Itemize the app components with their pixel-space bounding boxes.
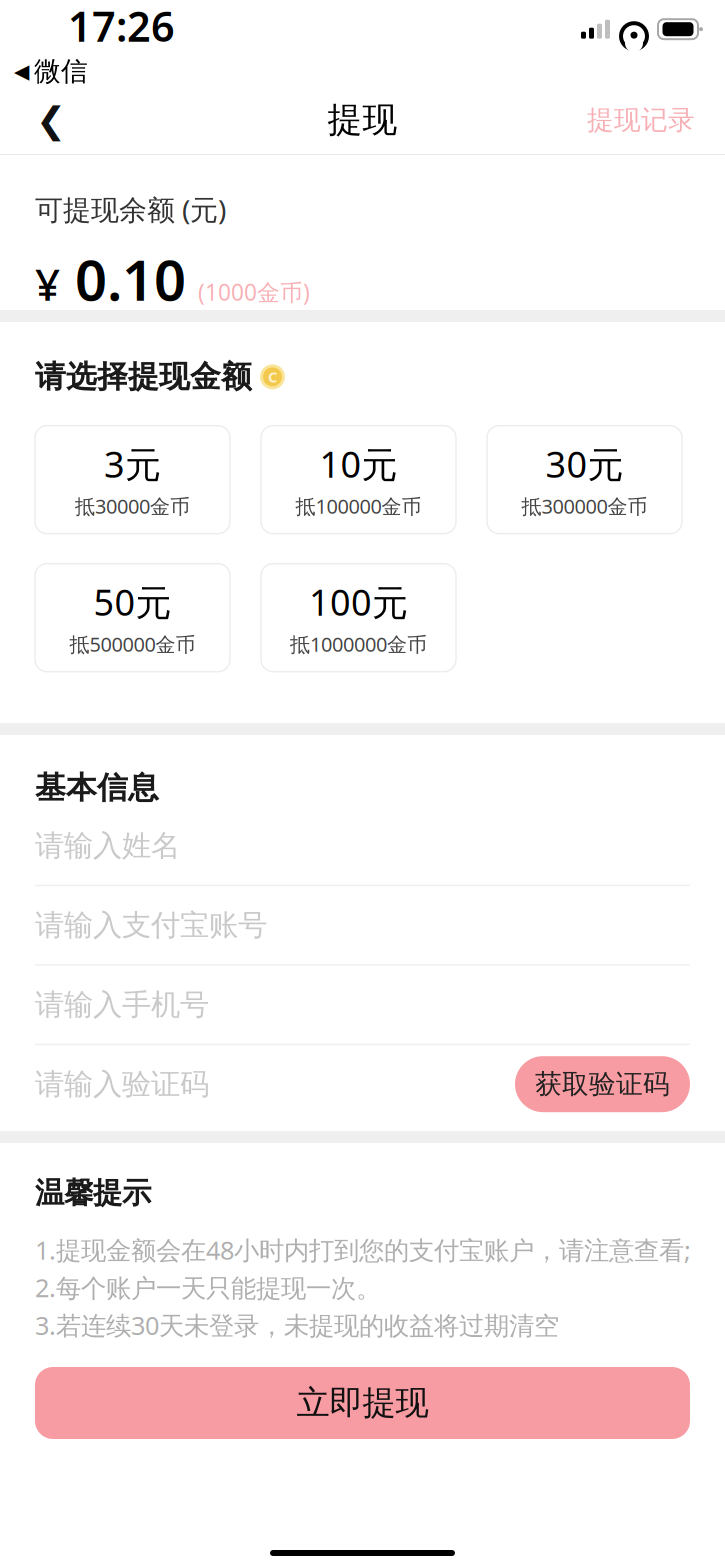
button[interactable]: 请输入验证码 <box>35 1045 515 1123</box>
button[interactable]: Back <box>16 90 86 150</box>
staticText: 30元 <box>545 440 623 488</box>
staticText: 请输入姓名 <box>35 828 180 864</box>
staticText: 抵100000金币 <box>295 493 421 519</box>
staticText: 可提现余额 (元) <box>35 191 226 228</box>
staticText: 3元 <box>104 440 161 488</box>
staticText: 请输入验证码 <box>35 1066 209 1102</box>
staticText: 请输入手机号 <box>35 987 209 1023</box>
staticText: ◀ <box>14 60 29 83</box>
button[interactable]: 提现记录 <box>573 90 709 150</box>
staticText: 提现 <box>327 99 397 141</box>
staticText: 基本信息 <box>35 769 159 807</box>
staticText: 1.提现金额会在48小时内打到您的支付宝账户，请注意查看; <box>35 1233 691 1267</box>
staticText: 微信 <box>34 55 88 88</box>
staticText: 17:26 <box>68 0 175 53</box>
staticText: 抵300000金币 <box>521 493 647 519</box>
staticText: 50元 <box>93 578 171 626</box>
button[interactable]: 50元 <box>35 564 230 672</box>
staticText: 0.10 <box>60 242 186 316</box>
staticText: 10元 <box>319 440 397 488</box>
button[interactable]: 请输入支付宝账号 <box>0 886 725 964</box>
staticText: 3.若连续30天未登录，未提现的收益将过期清空 <box>35 1308 559 1342</box>
staticText: 温馨提示 <box>35 1175 151 1211</box>
button[interactable]: 30元 <box>487 426 682 534</box>
staticText: 100元 <box>309 578 408 626</box>
staticText: 抵1000000金币 <box>290 631 427 657</box>
button[interactable]: 10元 <box>261 426 456 534</box>
staticText: 立即提现 <box>296 1382 428 1423</box>
staticText: ❮ <box>36 100 66 140</box>
staticText: 提现记录 <box>587 104 695 136</box>
button[interactable]: 3元 <box>35 426 230 534</box>
staticText: ¥ <box>35 254 60 313</box>
staticText: 获取验证码 <box>535 1068 670 1101</box>
button[interactable]: 100元 <box>261 564 456 672</box>
staticText: 2.每个账户一天只能提现一次。 <box>35 1271 381 1304</box>
button[interactable]: 立即提现 <box>35 1367 690 1439</box>
staticText: 抵30000金币 <box>75 493 190 519</box>
staticText: (1000金币) <box>186 277 310 307</box>
staticText: C <box>268 367 277 387</box>
button[interactable]: 请输入姓名 <box>0 807 725 885</box>
button[interactable]: 获取验证码 <box>515 1056 690 1112</box>
staticText: 抵500000金币 <box>69 631 195 657</box>
button[interactable]: 请输入手机号 <box>0 966 725 1044</box>
staticText: 请输入支付宝账号 <box>35 907 267 943</box>
staticText: 请选择提现金额 <box>35 358 252 396</box>
